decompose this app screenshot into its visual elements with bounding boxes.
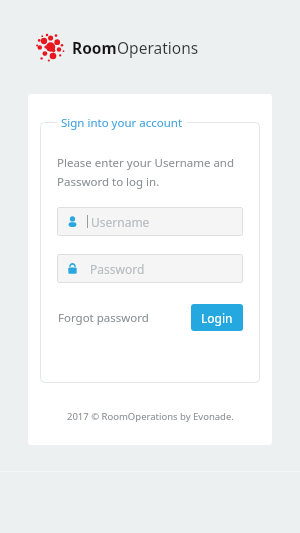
button[interactable]: Username <box>57 207 243 236</box>
staticText: 2017 © RoomOperations by Evonade. <box>67 410 234 423</box>
staticText: Forgot password <box>58 310 149 326</box>
staticText: Please enter your Username and <box>57 155 235 171</box>
other: Username <box>67 216 78 227</box>
staticText: Username <box>91 214 150 230</box>
staticText: Sign into your account <box>61 115 183 131</box>
staticText: Login <box>201 310 233 326</box>
button[interactable]: Password <box>57 254 243 283</box>
other: Password <box>67 263 78 274</box>
staticText: Password <box>90 261 145 277</box>
staticText: Operations <box>117 37 199 58</box>
button[interactable]: Forgot password <box>57 306 150 330</box>
button[interactable]: Login <box>191 304 243 331</box>
staticText: Room <box>72 37 117 58</box>
staticText: Password to log in. <box>57 174 160 190</box>
